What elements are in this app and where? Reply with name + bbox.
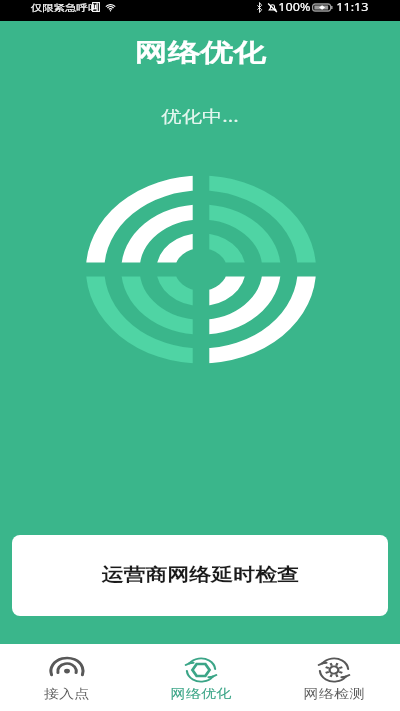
staticText: 11:13 — [336, 0, 369, 14]
staticText: 100% — [278, 0, 311, 14]
other: 接入点 — [50, 656, 84, 684]
other: 网络检测 — [317, 656, 351, 684]
staticText: 运营商网络延时检查 — [101, 564, 299, 587]
staticText: 仅限紧急呼叫 — [31, 2, 99, 13]
button[interactable]: 接入点 — [0, 644, 134, 711]
button[interactable]: 网络检测 — [267, 644, 400, 711]
staticText: 网络优化 — [134, 37, 266, 68]
other: 网络优化 — [184, 656, 218, 684]
button[interactable]: 网络优化 — [134, 644, 267, 711]
staticText: 接入点 — [44, 686, 90, 702]
button[interactable]: 运营商网络延时检查 — [12, 535, 388, 616]
staticText: 网络检测 — [303, 686, 364, 702]
staticText: 优化中... — [161, 105, 239, 127]
staticText: 网络优化 — [170, 686, 231, 702]
